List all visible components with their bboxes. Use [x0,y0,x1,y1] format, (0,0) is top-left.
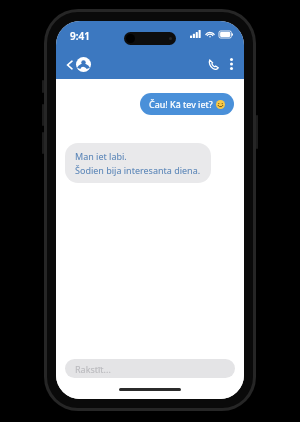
button[interactable]: Back to contact [64,54,93,75]
staticText: 9:41 [70,29,90,43]
staticText: Čau! Kā tev iet? [149,98,213,110]
button[interactable]: Call [202,53,225,76]
button[interactable]: Čau! Kā tev iet? [140,93,234,115]
button[interactable]: Rakstīt... [65,359,235,378]
staticText: Šodien bija interesanta diena. [75,164,201,176]
staticText: Rakstīt... [75,363,111,375]
button[interactable]: Man iet labi. [65,143,211,183]
button[interactable]: More options [225,52,238,76]
staticText: Man iet labi. [75,150,127,162]
